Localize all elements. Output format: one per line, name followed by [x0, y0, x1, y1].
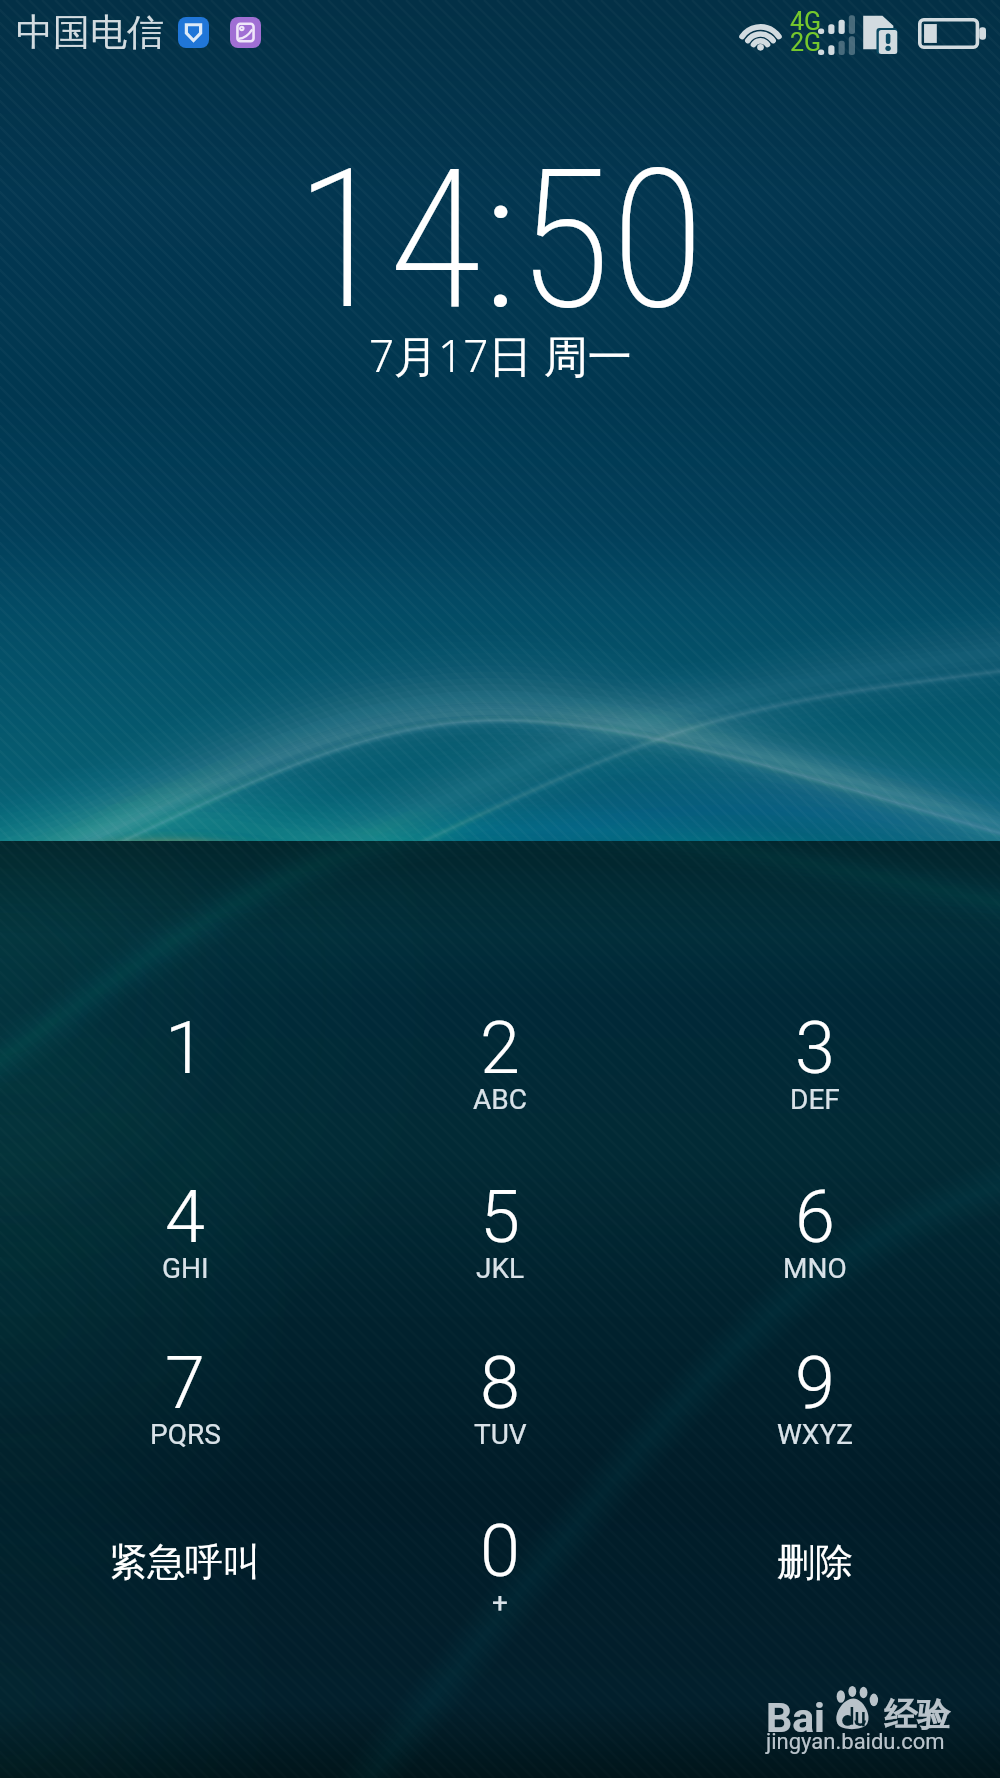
staticText: 4G — [790, 7, 822, 36]
button[interactable]: 2 — [395, 990, 605, 1158]
staticText: 2 — [480, 1006, 520, 1090]
staticText: Bai — [766, 1694, 825, 1742]
button[interactable]: 6 — [710, 1159, 920, 1327]
staticText: 3 — [795, 1006, 835, 1090]
button[interactable]: Security app notification — [178, 17, 209, 48]
staticText: WXYZ — [777, 1418, 853, 1451]
button[interactable]: 5 — [395, 1159, 605, 1327]
staticText: ABC — [473, 1083, 527, 1116]
staticText: TUV — [474, 1418, 527, 1451]
button[interactable]: 9 — [710, 1325, 920, 1493]
other: Battery — [918, 18, 986, 49]
staticText: MNO — [783, 1252, 847, 1285]
staticText: PQRS — [150, 1418, 221, 1451]
other: SIM card — [858, 9, 910, 57]
staticText: 7月17日 周一 — [369, 325, 632, 385]
staticText: 经验 — [884, 1694, 950, 1736]
button[interactable]: 紧急呼叫 — [55, 1528, 315, 1596]
staticText: JKL — [476, 1252, 525, 1285]
button[interactable]: 8 — [395, 1325, 605, 1493]
staticText: 2G — [790, 28, 822, 57]
staticText: 1 — [165, 1006, 205, 1090]
staticText: jingyan.baidu.com — [766, 1729, 945, 1755]
staticText: 0 — [480, 1509, 520, 1593]
staticText: DEF — [790, 1083, 840, 1116]
button[interactable]: 7 — [80, 1325, 290, 1493]
staticText: 紧急呼叫 — [109, 1538, 261, 1586]
staticText: 6 — [795, 1175, 835, 1259]
staticText: 4 — [165, 1175, 205, 1259]
button[interactable]: 4 — [80, 1159, 290, 1327]
staticText: GHI — [162, 1252, 209, 1285]
staticText: 7 — [165, 1341, 205, 1425]
other: Wi-Fi — [736, 16, 785, 52]
staticText: 5 — [480, 1175, 520, 1259]
staticText: 14:50 — [295, 127, 705, 353]
button[interactable]: 删除 — [685, 1528, 945, 1596]
staticText: 删除 — [777, 1538, 853, 1586]
staticText: 9 — [795, 1341, 835, 1425]
staticText: 8 — [480, 1341, 520, 1425]
button[interactable]: 0 — [395, 1493, 605, 1661]
staticText: 中国电信 — [16, 9, 164, 56]
button[interactable]: 3 — [710, 990, 920, 1158]
staticText: + — [492, 1586, 508, 1619]
button[interactable]: 1 — [80, 990, 290, 1158]
